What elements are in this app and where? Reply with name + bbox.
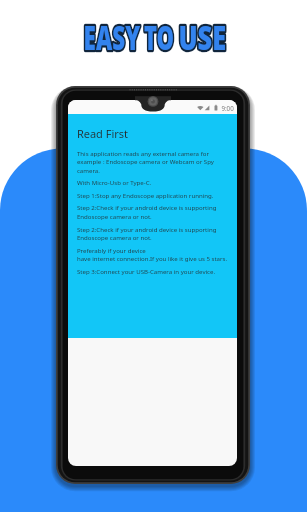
button[interactable] <box>68 114 237 338</box>
